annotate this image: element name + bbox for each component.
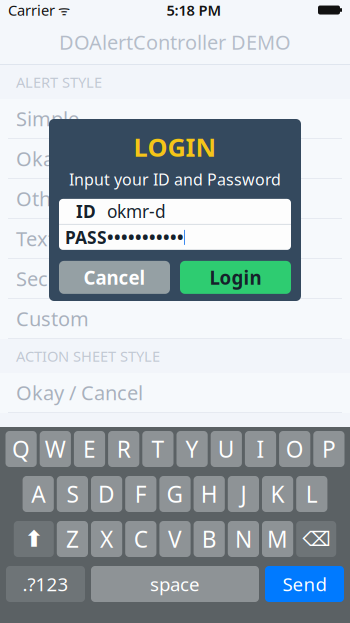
button[interactable]: R	[108, 431, 139, 467]
staticText: M	[267, 524, 288, 554]
staticText: DOAlertController DEMO	[59, 29, 291, 55]
button[interactable]: .?123	[6, 566, 85, 602]
button[interactable]: Login	[180, 261, 291, 294]
button[interactable]: I	[245, 431, 276, 467]
staticText: 5:18 PM	[166, 0, 221, 20]
staticText: Okay / Cancel	[16, 379, 143, 406]
staticText: F	[135, 479, 147, 509]
button[interactable]: X	[91, 521, 122, 557]
staticText: H	[201, 479, 218, 509]
button[interactable]: Okay / Cancel	[0, 139, 350, 179]
staticText: N	[235, 524, 252, 554]
staticText: Text Field	[16, 225, 103, 252]
button[interactable]: Secure Text Field	[0, 259, 350, 299]
button[interactable]: U	[211, 431, 242, 467]
staticText: .?123	[22, 572, 68, 596]
staticText: ⌫	[302, 528, 330, 550]
button[interactable]: Delete	[296, 521, 336, 557]
staticText: S	[66, 479, 78, 509]
staticText: Okay / Cancel	[16, 145, 143, 172]
button[interactable]: Send	[265, 566, 344, 602]
staticText: O	[286, 434, 304, 464]
staticText: •••••••••••	[107, 226, 184, 249]
staticText: I	[256, 434, 264, 464]
button[interactable]: Cancel	[59, 261, 170, 294]
button[interactable]: V	[159, 521, 191, 557]
button[interactable]: Q	[5, 431, 37, 467]
staticText: ᯤ	[55, 1, 70, 19]
button[interactable]: G	[159, 476, 191, 512]
button[interactable]: Shift	[14, 521, 54, 557]
button[interactable]: Y	[176, 431, 208, 467]
staticText: Carrier	[8, 0, 55, 20]
staticText: E	[83, 434, 96, 464]
staticText: Login	[209, 265, 261, 290]
staticText: X	[100, 524, 113, 554]
staticText: P	[322, 434, 336, 464]
staticText: D	[98, 479, 115, 509]
button[interactable]: A	[23, 476, 54, 512]
staticText: T	[151, 434, 164, 464]
button[interactable]: Simple	[0, 99, 350, 139]
staticText: Z	[66, 524, 79, 554]
staticText: J	[240, 479, 246, 509]
button[interactable]: Z	[57, 521, 88, 557]
button[interactable]: M	[262, 521, 293, 557]
button[interactable]: J	[228, 476, 259, 512]
staticText: Secure Text Field	[16, 265, 171, 292]
staticText: ACTION SHEET STYLE	[16, 346, 160, 366]
staticText: Send	[282, 572, 326, 596]
staticText: K	[271, 479, 285, 509]
staticText: U	[218, 434, 235, 464]
staticText: Custom	[16, 305, 89, 332]
staticText: ⬆	[24, 526, 43, 552]
staticText: okmr-d	[107, 200, 166, 223]
staticText: B	[202, 524, 217, 554]
staticText: Other	[16, 185, 70, 212]
staticText: Q	[12, 434, 30, 464]
button[interactable]: B	[194, 521, 225, 557]
staticText: PASS	[65, 226, 107, 249]
button[interactable]: P	[313, 431, 344, 467]
staticText: Y	[186, 434, 199, 464]
button[interactable]: Okay / Cancel	[0, 373, 350, 413]
button[interactable]: Custom	[0, 299, 350, 339]
staticText: R	[117, 434, 131, 464]
staticText: ALERT STYLE	[16, 72, 102, 92]
button[interactable]: space	[91, 566, 259, 602]
staticText: V	[168, 524, 182, 554]
button[interactable]: O	[279, 431, 310, 467]
staticText: space	[150, 572, 200, 596]
staticText: ID	[76, 200, 96, 223]
button[interactable]: D	[91, 476, 122, 512]
button[interactable]: W	[40, 431, 71, 467]
button[interactable]: E	[74, 431, 105, 467]
staticText: G	[166, 479, 183, 509]
staticText: Cancel	[83, 265, 145, 290]
button[interactable]: L	[296, 476, 327, 512]
button[interactable]: Text Field	[0, 219, 350, 259]
button[interactable]: C	[125, 521, 156, 557]
button[interactable]: H	[194, 476, 225, 512]
staticText: L	[306, 479, 318, 509]
button[interactable]: Other	[0, 179, 350, 219]
staticText: Simple	[16, 105, 79, 132]
button[interactable]: N	[228, 521, 259, 557]
button[interactable]: K	[262, 476, 293, 512]
button[interactable]: S	[57, 476, 88, 512]
button[interactable]: F	[125, 476, 156, 512]
staticText: W	[45, 434, 66, 464]
staticText: C	[134, 524, 148, 554]
staticText: A	[31, 479, 45, 509]
staticText: Input your ID and Password	[69, 169, 281, 190]
button[interactable]: T	[142, 431, 173, 467]
staticText: LOGIN	[133, 130, 216, 164]
